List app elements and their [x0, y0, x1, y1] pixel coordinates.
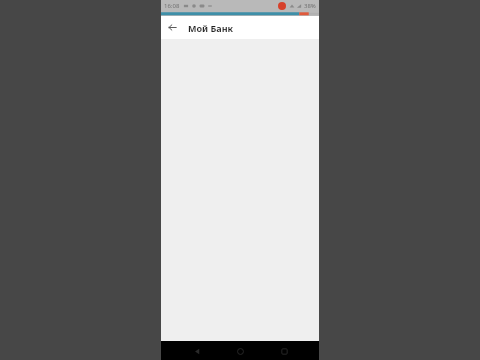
button[interactable]: Home	[232, 343, 248, 359]
staticText: 38%	[304, 2, 316, 10]
button[interactable]: Recent apps	[276, 343, 292, 359]
staticText: Мой Банк	[188, 22, 234, 34]
button[interactable]: Back	[189, 343, 205, 359]
staticText: 16:08	[164, 2, 180, 10]
button[interactable]: Back	[161, 16, 184, 39]
